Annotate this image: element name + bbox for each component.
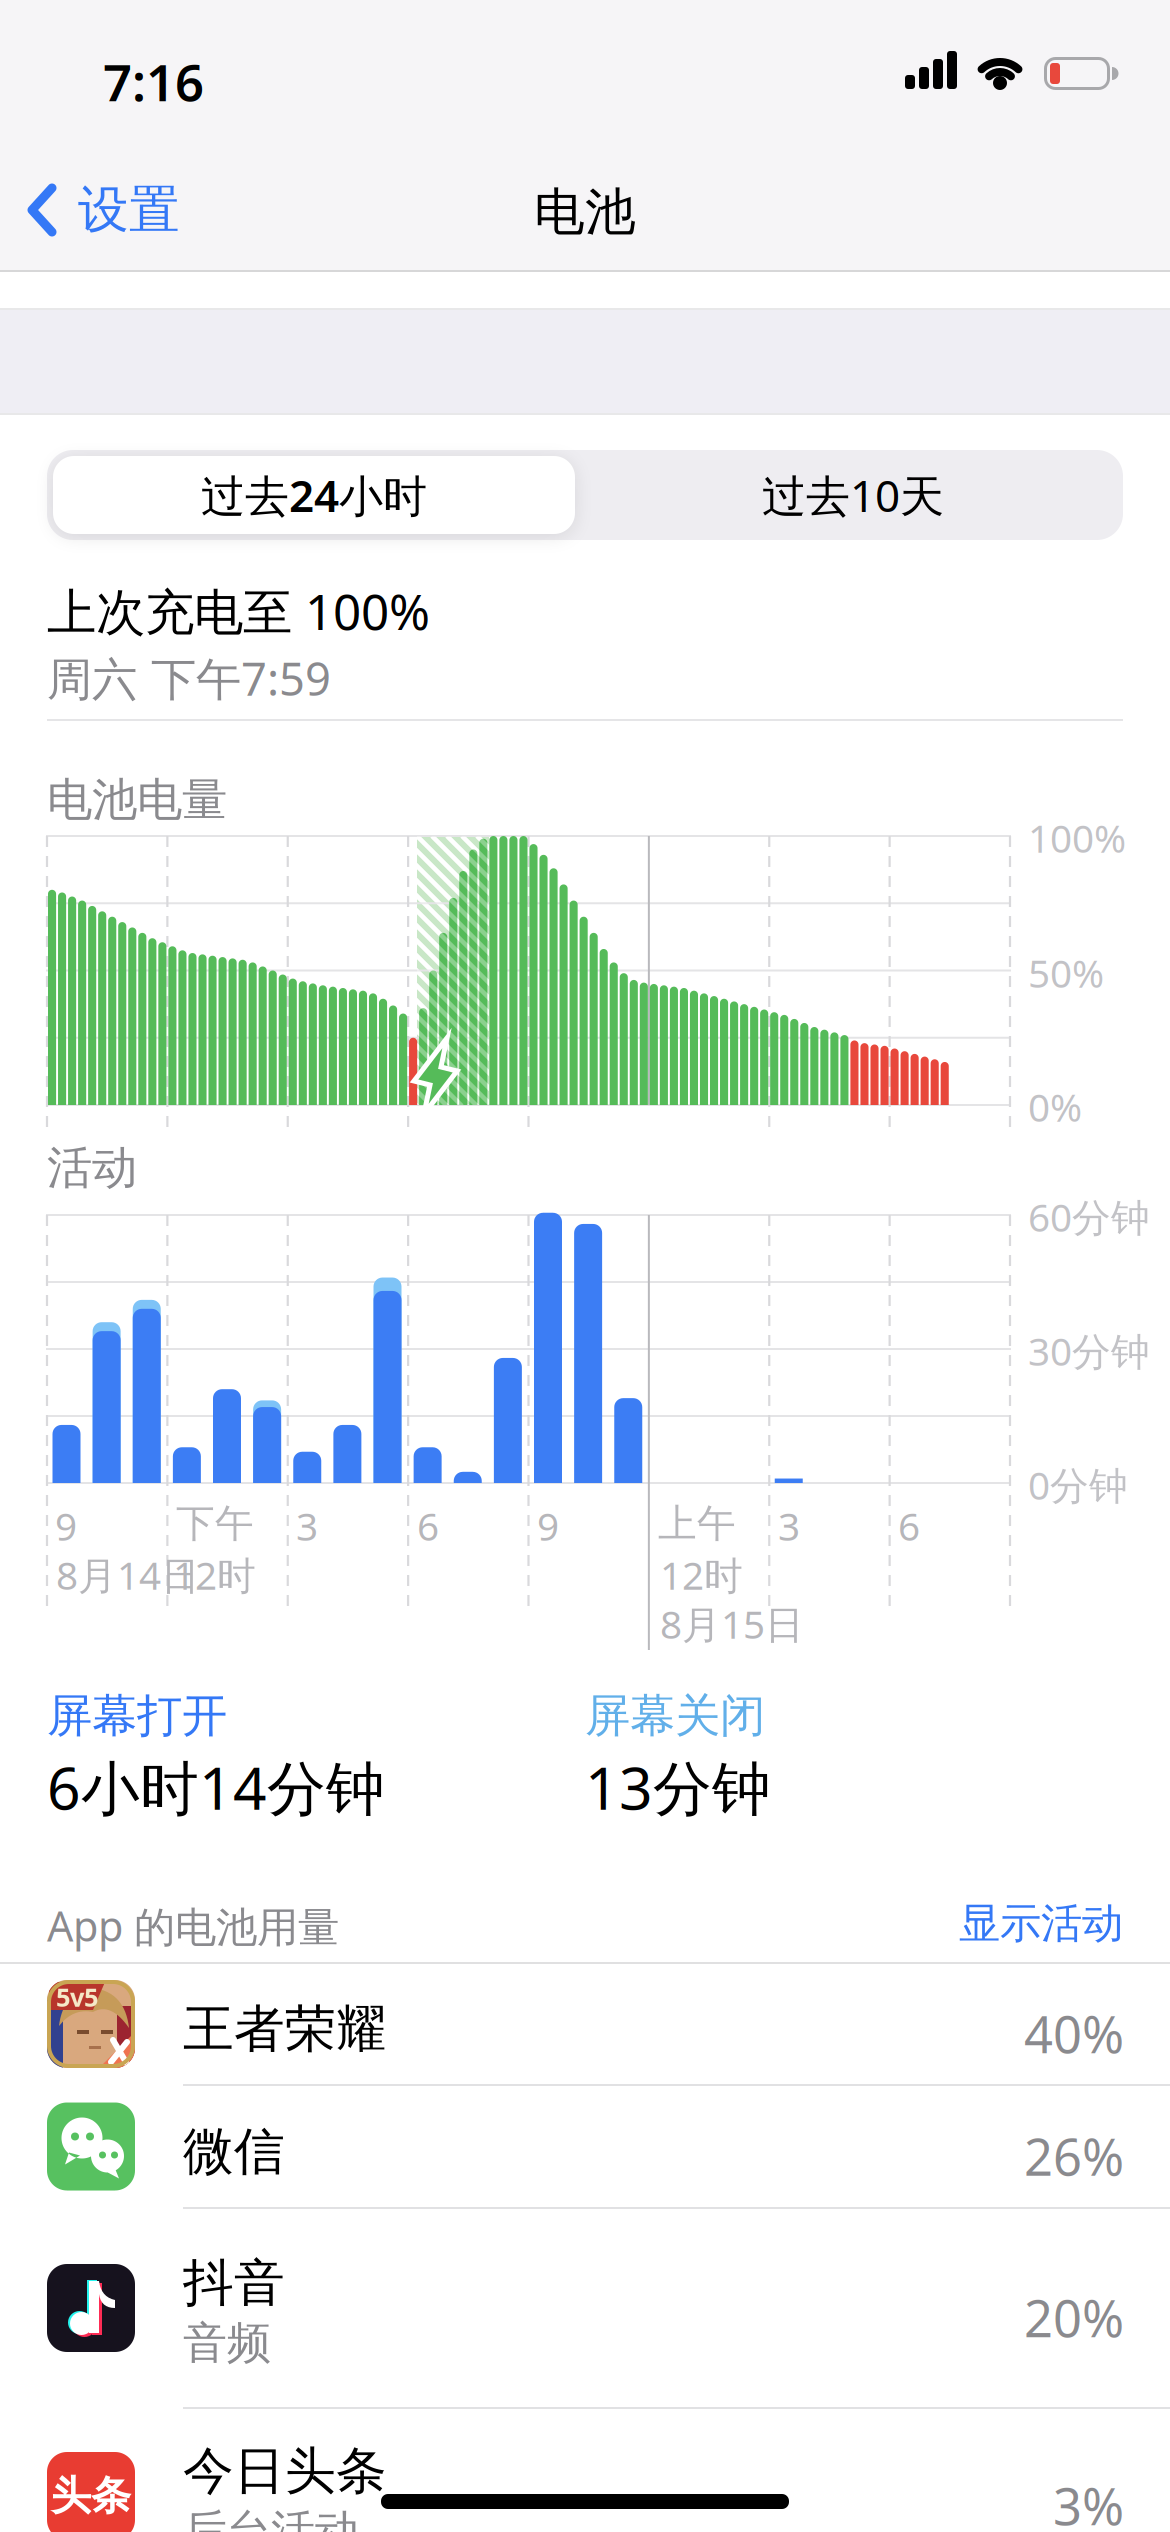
staticText: 今日头条	[183, 2440, 387, 2502]
staticText: 7:16	[103, 48, 204, 115]
staticText: 6小时14分钟	[47, 1748, 385, 1826]
button[interactable]: 微信	[0, 2085, 1170, 2208]
button[interactable]: 5v5	[0, 1963, 1170, 2085]
staticText: 3%	[1053, 2472, 1124, 2532]
staticText: 过去24小时	[201, 466, 427, 524]
staticText: 上次充电至 100%	[47, 578, 430, 643]
button[interactable]: 过去24小时	[53, 456, 575, 534]
staticText: 活动	[47, 1140, 137, 1196]
button[interactable]: 过去10天	[588, 454, 1118, 536]
staticText: 显示活动	[959, 1898, 1123, 1949]
staticText: 后台活动	[183, 2504, 359, 2532]
staticText: 屏幕关闭	[585, 1688, 765, 1744]
staticText: 8月15日	[660, 1598, 804, 1649]
button[interactable]: 抖音	[0, 2208, 1170, 2408]
staticText: 0分钟	[1028, 1459, 1128, 1510]
staticText: 12时	[173, 1549, 256, 1600]
button[interactable]: 头条	[0, 2396, 1170, 2532]
staticText: 微信	[183, 2120, 285, 2183]
staticText: 6	[898, 1500, 920, 1551]
staticText: 13分钟	[585, 1748, 771, 1826]
staticText: 6	[417, 1500, 439, 1551]
staticText: App 的电池用量	[47, 1898, 339, 1953]
staticText: 30分钟	[1028, 1325, 1150, 1376]
staticText: 40%	[1024, 2000, 1124, 2067]
staticText: 过去10天	[762, 466, 944, 524]
staticText: 20%	[1024, 2284, 1124, 2351]
staticText: 26%	[1024, 2122, 1124, 2190]
staticText: 电池电量	[47, 772, 227, 828]
staticText: 3	[778, 1500, 800, 1551]
staticText: 9	[55, 1500, 77, 1551]
staticText: 0%	[1028, 1081, 1082, 1132]
staticText: 电池	[534, 181, 636, 243]
staticText: 12时	[660, 1549, 743, 1600]
staticText: 下午	[176, 1500, 254, 1547]
staticText: 屏幕打开	[47, 1688, 227, 1744]
staticText: 头条	[51, 2471, 131, 2520]
staticText: 50%	[1028, 947, 1104, 998]
staticText: 周六 下午7:59	[47, 648, 331, 708]
staticText: 音频	[183, 2316, 271, 2370]
staticText: 3	[296, 1500, 318, 1551]
button[interactable]: 显示活动	[959, 1898, 1123, 1949]
staticText: 设置	[78, 179, 180, 241]
staticText: 100%	[1028, 812, 1126, 863]
button[interactable]: 设置	[28, 180, 180, 240]
staticText: 抖音	[183, 2252, 285, 2314]
staticText: 9	[537, 1500, 559, 1551]
staticText: 8月14日	[56, 1549, 200, 1600]
staticText: 60分钟	[1028, 1191, 1150, 1242]
staticText: 上午	[658, 1500, 736, 1547]
staticText: 王者荣耀	[183, 1998, 387, 2060]
staticText: 5v5	[56, 1980, 98, 2014]
